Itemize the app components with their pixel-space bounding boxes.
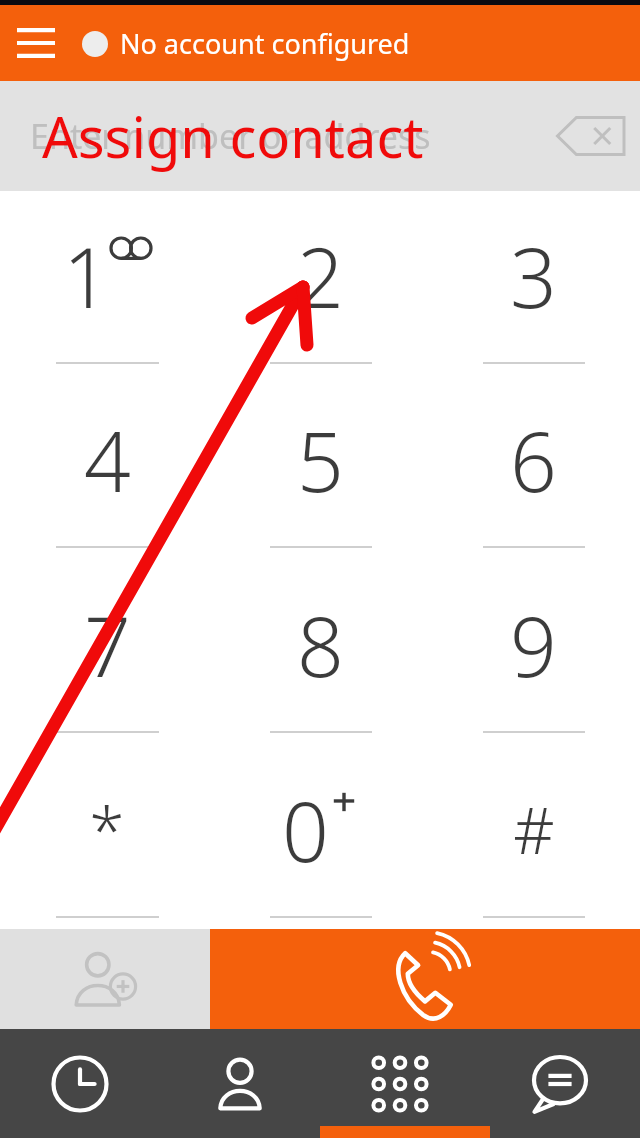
button[interactable]: Dialpad bbox=[320, 1029, 480, 1138]
staticText: 9 bbox=[510, 589, 557, 701]
staticText: No account configured bbox=[120, 25, 410, 62]
button[interactable]: 2 bbox=[214, 191, 427, 375]
staticText: Assign contact bbox=[42, 98, 424, 174]
staticText: 6 bbox=[510, 404, 557, 516]
button[interactable]: Messages bbox=[480, 1029, 640, 1138]
button[interactable]: Call bbox=[210, 929, 640, 1029]
button[interactable]: 8 bbox=[214, 559, 427, 744]
button[interactable]: 4 bbox=[0, 375, 214, 559]
button[interactable]: # bbox=[427, 744, 640, 929]
staticText: 1 bbox=[63, 220, 110, 332]
button[interactable]: * bbox=[0, 744, 214, 929]
staticText: 7 bbox=[84, 589, 131, 701]
button[interactable]: No account configured bbox=[82, 25, 410, 62]
staticText: * bbox=[89, 786, 125, 873]
button[interactable]: Backspace bbox=[550, 108, 630, 164]
staticText: 5 bbox=[297, 404, 344, 516]
staticText: Enter number or address bbox=[30, 113, 431, 159]
button[interactable]: 9 bbox=[427, 559, 640, 744]
button[interactable]: 0 bbox=[214, 744, 427, 929]
staticText: 3 bbox=[510, 220, 557, 332]
button[interactable]: Recent calls bbox=[0, 1029, 160, 1138]
staticText: 8 bbox=[297, 589, 344, 701]
button[interactable]: 7 bbox=[0, 559, 214, 744]
staticText: 4 bbox=[84, 404, 131, 516]
staticText: 0 bbox=[282, 774, 329, 886]
staticText: # bbox=[513, 786, 555, 873]
button[interactable]: 1 bbox=[0, 191, 214, 375]
button[interactable]: Add contact bbox=[0, 929, 210, 1029]
staticText: 2 bbox=[297, 220, 344, 332]
button[interactable]: 3 bbox=[427, 191, 640, 375]
button[interactable]: Contacts bbox=[160, 1029, 320, 1138]
button[interactable]: 5 bbox=[214, 375, 427, 559]
button[interactable]: Open navigation menu bbox=[10, 17, 62, 69]
button[interactable]: 6 bbox=[427, 375, 640, 559]
